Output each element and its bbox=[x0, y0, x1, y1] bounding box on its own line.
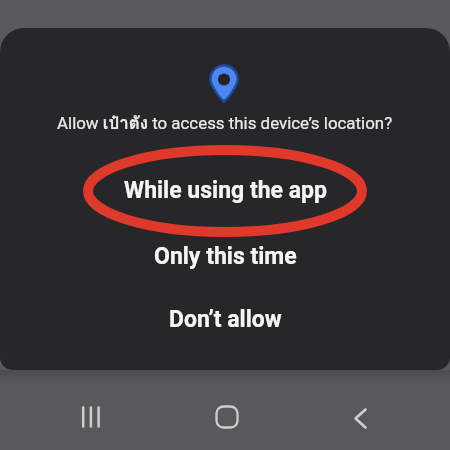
staticText: Only this time bbox=[154, 243, 297, 270]
button[interactable] bbox=[342, 400, 378, 436]
button[interactable] bbox=[73, 399, 109, 435]
button[interactable]: While using the app bbox=[0, 176, 450, 204]
button[interactable]: Don’t allow bbox=[0, 305, 450, 333]
staticText: While using the app bbox=[124, 177, 327, 204]
staticText: Don’t allow bbox=[169, 306, 282, 333]
button[interactable] bbox=[209, 399, 245, 435]
button[interactable]: Only this time bbox=[0, 242, 450, 270]
staticText: Allow เป๋าตัง to access this device’s lo… bbox=[57, 110, 393, 137]
